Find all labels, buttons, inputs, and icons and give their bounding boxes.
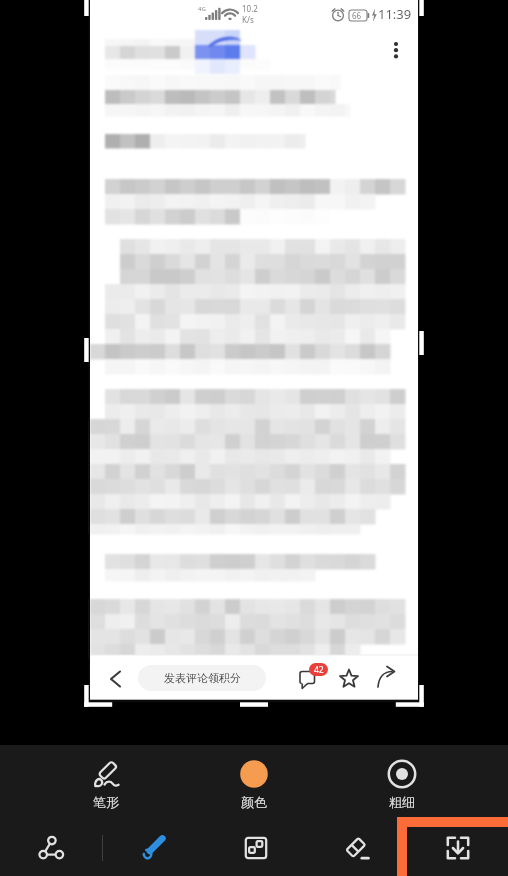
staticText: K/s [242,14,254,25]
staticText: 11:39 [378,5,412,23]
button[interactable]: 颜色 [180,745,328,810]
staticText: 发表评论领积分 [164,671,241,685]
button[interactable]: Eraser [306,820,407,876]
staticText: 颜色 [241,794,267,810]
button[interactable]: 笔形 [32,745,180,810]
staticText: 4G [198,5,206,13]
button[interactable]: Crop [407,820,508,876]
staticText: 42 [314,664,324,676]
button[interactable]: 粗细 [328,745,476,810]
button[interactable]: 发表评论领积分 [138,665,266,691]
button[interactable]: Mosaic [205,820,306,876]
staticText: 笔形 [93,794,119,810]
staticText: 粗细 [389,794,415,810]
staticText: 10.2 [242,3,258,14]
staticText: 66 [352,10,362,21]
button[interactable]: Brush [103,820,205,876]
button[interactable]: Shape tool [0,820,102,876]
